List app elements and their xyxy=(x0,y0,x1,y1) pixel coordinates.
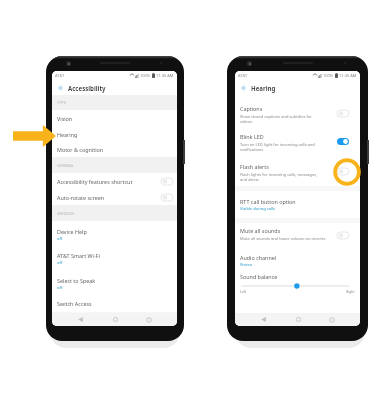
button[interactable]: Back xyxy=(73,313,87,326)
staticText: SERVICES xyxy=(57,211,75,216)
button[interactable]: Auto-rotate screen xyxy=(52,189,177,205)
button[interactable]: Navigate up xyxy=(56,83,65,92)
button[interactable]: Home xyxy=(108,313,122,326)
staticText: AT&T Smart Wi-Fi xyxy=(57,252,100,259)
button[interactable]: Vision xyxy=(52,110,177,126)
staticText: Audio channel xyxy=(240,254,277,261)
staticText: Hearing xyxy=(251,84,276,92)
staticText: Right xyxy=(346,289,355,294)
button[interactable]: Flash alerts xyxy=(235,159,360,186)
staticText: Accessibility xyxy=(68,84,106,92)
staticText: Switch Access xyxy=(57,300,92,307)
staticText: off xyxy=(57,285,63,290)
button[interactable]: Switch Access xyxy=(52,294,177,312)
staticText: Motor & cognition xyxy=(57,146,104,153)
staticText: Device Help xyxy=(57,228,87,235)
button[interactable]: Hearing xyxy=(52,126,177,142)
staticText: 100% xyxy=(323,73,334,78)
button[interactable]: Captions xyxy=(235,101,360,129)
staticText: Select to Speak xyxy=(57,277,96,284)
staticText: Hearing xyxy=(57,131,78,138)
other: Pointer arrow xyxy=(13,125,56,147)
staticText: Show closed captions and subtitles for v… xyxy=(240,114,323,124)
button[interactable]: Blink LED xyxy=(235,129,360,159)
staticText: Mute all sounds and lower volume on rece… xyxy=(240,236,326,241)
button[interactable]: Navigate up xyxy=(239,83,248,92)
staticText: AT&T xyxy=(55,73,65,78)
button[interactable]: Audio channel xyxy=(235,247,360,269)
button[interactable]: RTT call button option xyxy=(235,191,360,218)
button[interactable]: Motor & cognition xyxy=(52,142,177,157)
staticText: Stereo xyxy=(240,262,253,267)
staticText: Blink LED xyxy=(240,133,264,140)
other: Highlight circle xyxy=(333,158,361,186)
staticText: Sound balance xyxy=(240,273,278,280)
button[interactable]: AT&T Smart Wi-Fi xyxy=(52,245,177,270)
staticText: Captions xyxy=(240,105,263,112)
staticText: Turn on LED light for incoming calls and… xyxy=(240,142,323,152)
staticText: 100% xyxy=(140,73,151,78)
staticText: Flash lights for incoming calls, message… xyxy=(240,172,323,182)
staticText: Accessibility features shortcut xyxy=(57,178,133,185)
staticText: 11:30 AM xyxy=(156,73,174,78)
button[interactable]: Mute all sounds xyxy=(235,223,360,247)
staticText: Auto-rotate screen xyxy=(57,194,105,201)
staticText: off xyxy=(57,260,63,265)
button[interactable]: Accessibility features shortcut xyxy=(52,173,177,189)
staticText: off xyxy=(57,236,63,241)
staticText: RTT call button option xyxy=(240,198,296,205)
button[interactable]: Home xyxy=(291,313,305,326)
staticText: AT&T xyxy=(238,73,248,78)
staticText: GENERAL xyxy=(57,163,75,168)
button[interactable]: Device Help xyxy=(52,221,177,245)
staticText: TYPE xyxy=(57,100,67,105)
button[interactable]: Recent apps xyxy=(325,313,339,326)
staticText: 11:30 AM xyxy=(339,73,357,78)
button[interactable]: Back xyxy=(256,313,270,326)
staticText: Left xyxy=(240,289,247,294)
button[interactable]: Select to Speak xyxy=(52,270,177,294)
staticText: Vision xyxy=(57,115,73,122)
button[interactable]: Recent apps xyxy=(142,313,156,326)
staticText: Visible during calls xyxy=(240,206,275,211)
staticText: Flash alerts xyxy=(240,163,269,170)
staticText: Mute all sounds xyxy=(240,227,281,234)
